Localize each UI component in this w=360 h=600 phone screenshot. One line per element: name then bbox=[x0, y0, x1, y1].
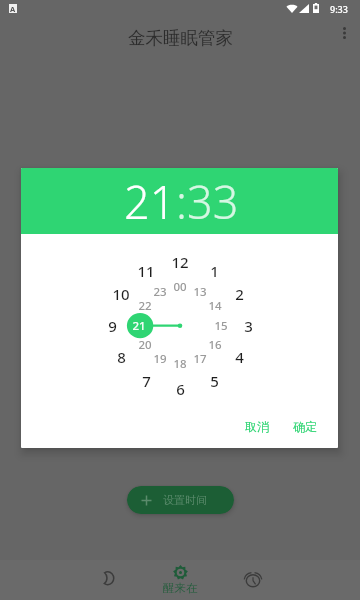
staticText: 3 bbox=[244, 316, 253, 336]
staticText: 13 bbox=[193, 284, 207, 300]
staticText: 16 bbox=[208, 337, 222, 353]
staticText: 14 bbox=[208, 298, 222, 314]
staticText: 9:33 bbox=[330, 3, 348, 15]
staticText: 1 bbox=[210, 261, 219, 281]
button[interactable]: 取消 bbox=[237, 413, 277, 440]
button[interactable]: 设置时间 bbox=[127, 486, 234, 514]
staticText: 00 bbox=[173, 279, 187, 295]
staticText: :33 bbox=[176, 171, 239, 232]
button[interactable]: 确定 bbox=[285, 413, 325, 440]
staticText: 12 bbox=[171, 252, 189, 272]
staticText: 2 bbox=[235, 284, 244, 304]
staticText: 21 bbox=[132, 318, 146, 334]
button[interactable]: 醒来在 bbox=[140, 558, 220, 600]
staticText: 8 bbox=[117, 347, 126, 367]
staticText: 取消 bbox=[245, 419, 269, 434]
staticText: 18 bbox=[173, 356, 187, 372]
staticText: 23 bbox=[153, 284, 167, 300]
staticText: 19 bbox=[153, 351, 167, 367]
staticText: 确定 bbox=[293, 419, 317, 434]
staticText: 金禾睡眠管家 bbox=[128, 27, 233, 49]
staticText: 6 bbox=[176, 379, 185, 399]
staticText: 设置时间 bbox=[163, 493, 207, 507]
staticText: 5 bbox=[210, 371, 219, 391]
staticText: 10 bbox=[112, 284, 130, 304]
button[interactable]: Alarm bbox=[218, 560, 288, 600]
staticText: 15 bbox=[214, 318, 228, 334]
staticText: A bbox=[10, 4, 16, 13]
button[interactable]: Sleep bbox=[72, 560, 142, 600]
staticText: 9 bbox=[108, 316, 117, 336]
staticText: 11 bbox=[137, 261, 155, 281]
staticText: 7 bbox=[142, 371, 151, 391]
staticText: 20 bbox=[138, 337, 152, 353]
button[interactable]: More options bbox=[326, 19, 360, 56]
staticText: 17 bbox=[193, 351, 207, 367]
staticText: 4 bbox=[235, 347, 244, 367]
staticText: 22 bbox=[138, 298, 152, 314]
staticText: 醒来在 bbox=[163, 581, 198, 595]
staticText: 21 bbox=[124, 171, 176, 232]
